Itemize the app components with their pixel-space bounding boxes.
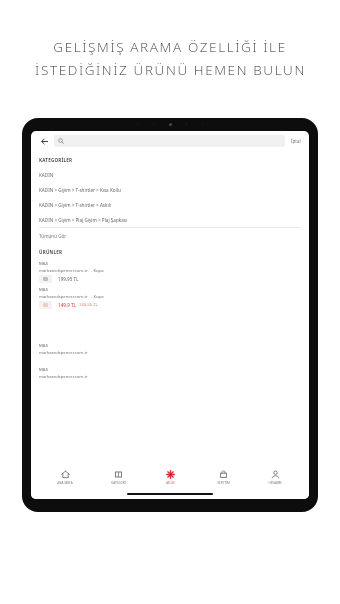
button[interactable]: M&S	[31, 341, 309, 358]
button[interactable]: KADIN > Giyim > Plaj Giyim > Plaj Şapkas…	[31, 212, 309, 227]
staticText: - Kupa	[91, 268, 104, 274]
button[interactable]: KADIN	[31, 167, 309, 182]
staticText: KADIN > Giyim > Plaj Giyim > Plaj Şapkas…	[39, 217, 128, 223]
button[interactable]: M&S	[31, 259, 309, 285]
staticText: KADIN > Giyim > T-shirtler > Kısa Kollu	[39, 187, 121, 193]
staticText: İptal	[291, 138, 301, 144]
staticText: ÜRÜNLER	[39, 249, 63, 255]
button[interactable]: KADIN > Giyim > T-shirtler > Askılı	[31, 197, 309, 212]
button[interactable]: Categories	[98, 468, 138, 487]
staticText: M&S	[39, 287, 49, 293]
staticText: KADIN	[39, 172, 54, 178]
staticText: 199,95 TL	[58, 276, 79, 282]
staticText: M&S	[39, 343, 49, 349]
staticText: ANA SAYFA	[57, 481, 73, 485]
staticText: Tümünü Gör	[39, 233, 67, 239]
staticText: AR-GE	[166, 481, 175, 485]
staticText: marksandspencer.com.tr	[39, 294, 88, 300]
staticText: marksandspencer.com.tr	[39, 268, 88, 274]
button[interactable]: KADIN > Giyim > T-shirtler > Kısa Kollu	[31, 182, 309, 197]
staticText: HESABIM	[268, 481, 282, 485]
button[interactable]: Tümünü Gör	[31, 228, 309, 243]
staticText: KATEGORİLER	[39, 157, 73, 163]
button[interactable]: Back	[37, 134, 51, 148]
button[interactable]: M&S	[31, 365, 309, 382]
staticText: KADIN > Giyim > T-shirtler > Askılı	[39, 202, 112, 208]
button[interactable]: Search	[150, 468, 190, 487]
button[interactable]	[54, 135, 285, 147]
button[interactable]: Cart	[203, 468, 243, 487]
staticText: GELİŞMİŞ ARAMA ÖZELLİĞİ İLE	[53, 38, 287, 56]
staticText: 199,95 TL	[79, 302, 98, 308]
staticText: KATEGORİ	[111, 481, 126, 485]
button[interactable]: Home	[45, 468, 85, 487]
button[interactable]: M&S	[31, 285, 309, 311]
staticText: marksandspencer.com.tr	[39, 350, 88, 356]
button[interactable]: Account	[255, 468, 295, 487]
button[interactable]: İptal	[289, 136, 303, 146]
staticText: - Kupa	[91, 294, 104, 300]
staticText: marksandspencer.com.tr	[39, 374, 88, 380]
staticText: M&S	[39, 261, 49, 267]
staticText: 149,9 TL	[58, 302, 76, 308]
staticText: İSTEDİĞİNİZ ÜRÜNÜ HEMEN BULUN	[35, 61, 306, 79]
staticText: M&S	[39, 367, 49, 373]
staticText: SEPETİM	[217, 481, 230, 485]
